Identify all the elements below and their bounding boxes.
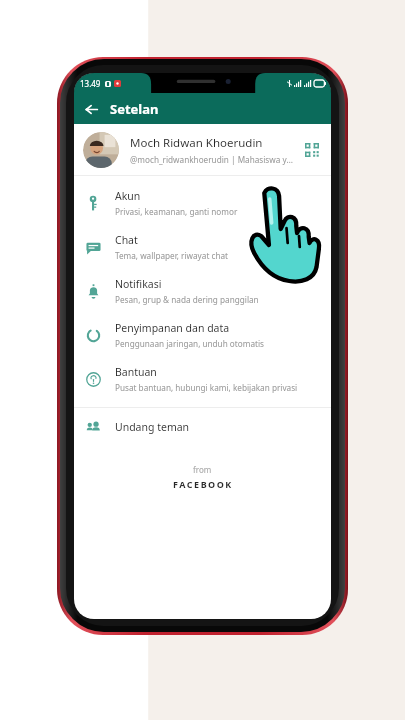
button[interactable]: Chat: [74, 225, 331, 269]
button[interactable]: QR code: [302, 140, 322, 160]
staticText: Pesan, grup & nada dering panggilan: [115, 294, 259, 305]
button[interactable]: Moch Ridwan Khoerudin: [74, 124, 331, 175]
staticText: Undang teman: [115, 420, 190, 434]
button[interactable]: Notifikasi: [74, 269, 331, 313]
staticText: Pusat bantuan, hubungi kami, kebijakan p…: [115, 382, 298, 393]
button[interactable]: Penyimpanan dan data: [74, 313, 331, 357]
staticText: Tema, wallpaper, riwayat chat: [115, 250, 229, 261]
staticText: Penyimpanan dan data: [115, 321, 230, 335]
staticText: Setelan: [110, 100, 159, 118]
staticText: FACEBOOK: [173, 478, 233, 490]
staticText: Moch Ridwan Khoerudin: [130, 135, 263, 151]
staticText: Akun: [115, 189, 141, 203]
button[interactable]: Akun: [74, 181, 331, 225]
button[interactable]: Undang teman: [74, 412, 331, 442]
staticText: Notifikasi: [115, 277, 162, 291]
button[interactable]: Bantuan: [74, 357, 331, 401]
button[interactable]: Back: [80, 98, 102, 120]
staticText: Privasi, keamanan, ganti nomor: [115, 206, 238, 217]
staticText: Chat: [115, 233, 138, 247]
staticText: Bantuan: [115, 365, 157, 379]
staticText: from: [193, 464, 212, 475]
staticText: @moch_ridwankhoerudin | Mahasiswa yang…: [130, 154, 297, 165]
staticText: Penggunaan jaringan, unduh otomatis: [115, 338, 264, 349]
staticText: 13.49: [80, 78, 101, 89]
